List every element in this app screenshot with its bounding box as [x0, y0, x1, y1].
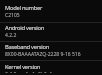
button[interactable]: Baseband version [0, 43, 102, 62]
staticText: Baseband version [5, 43, 50, 51]
staticText: Android version [5, 24, 44, 32]
staticText: 4.2.2 [5, 32, 17, 39]
staticText: Kernel version [5, 63, 41, 71]
button[interactable]: Kernel version [0, 63, 102, 73]
staticText: 3.4.0-perf-g1a2b3c4 [5, 71, 52, 73]
button[interactable]: Model number [0, 4, 102, 23]
staticText: 8X00-BAAAATAZQ-2228 9-16 516 [5, 51, 81, 58]
staticText: Model number [5, 4, 43, 12]
staticText: C2105 [5, 12, 20, 19]
button[interactable]: Android version [0, 24, 102, 43]
